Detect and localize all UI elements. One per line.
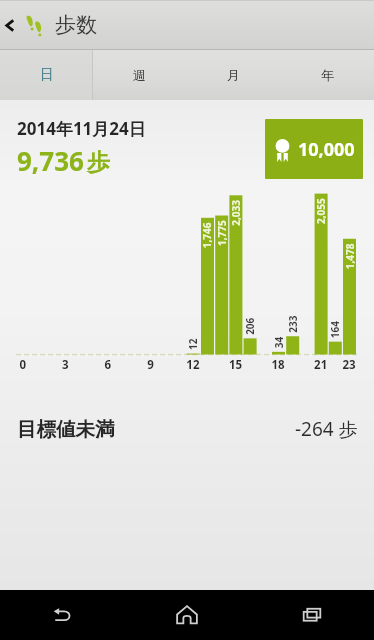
- staticText: 歩数: [55, 12, 97, 38]
- staticText: 目標値未満: [17, 417, 115, 442]
- staticText: 2014年11月24日: [17, 117, 146, 140]
- staticText: 日: [40, 66, 54, 84]
- staticText: -264 歩: [295, 416, 358, 442]
- button[interactable]: 週: [93, 50, 186, 100]
- button[interactable]: 日: [0, 50, 93, 100]
- staticText: 週: [133, 67, 146, 83]
- staticText: 9,736: [17, 143, 84, 178]
- staticText: 年: [321, 67, 334, 83]
- button[interactable]: 月: [186, 50, 280, 100]
- button[interactable]: Back: [0, 0, 19, 50]
- staticText: 歩: [87, 148, 110, 177]
- button[interactable]: Recents: [249, 590, 374, 640]
- button[interactable]: 10,000: [265, 119, 363, 179]
- button[interactable]: Home: [124, 590, 249, 640]
- staticText: 10,000: [298, 137, 355, 162]
- button[interactable]: 年: [280, 50, 374, 100]
- button[interactable]: Back: [0, 590, 124, 640]
- staticText: 月: [227, 67, 240, 83]
